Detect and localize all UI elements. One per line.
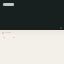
button[interactable]: [0, 31, 64, 34]
button[interactable]: Title: [3, 3, 14, 6]
button[interactable]: [0, 36, 64, 39]
